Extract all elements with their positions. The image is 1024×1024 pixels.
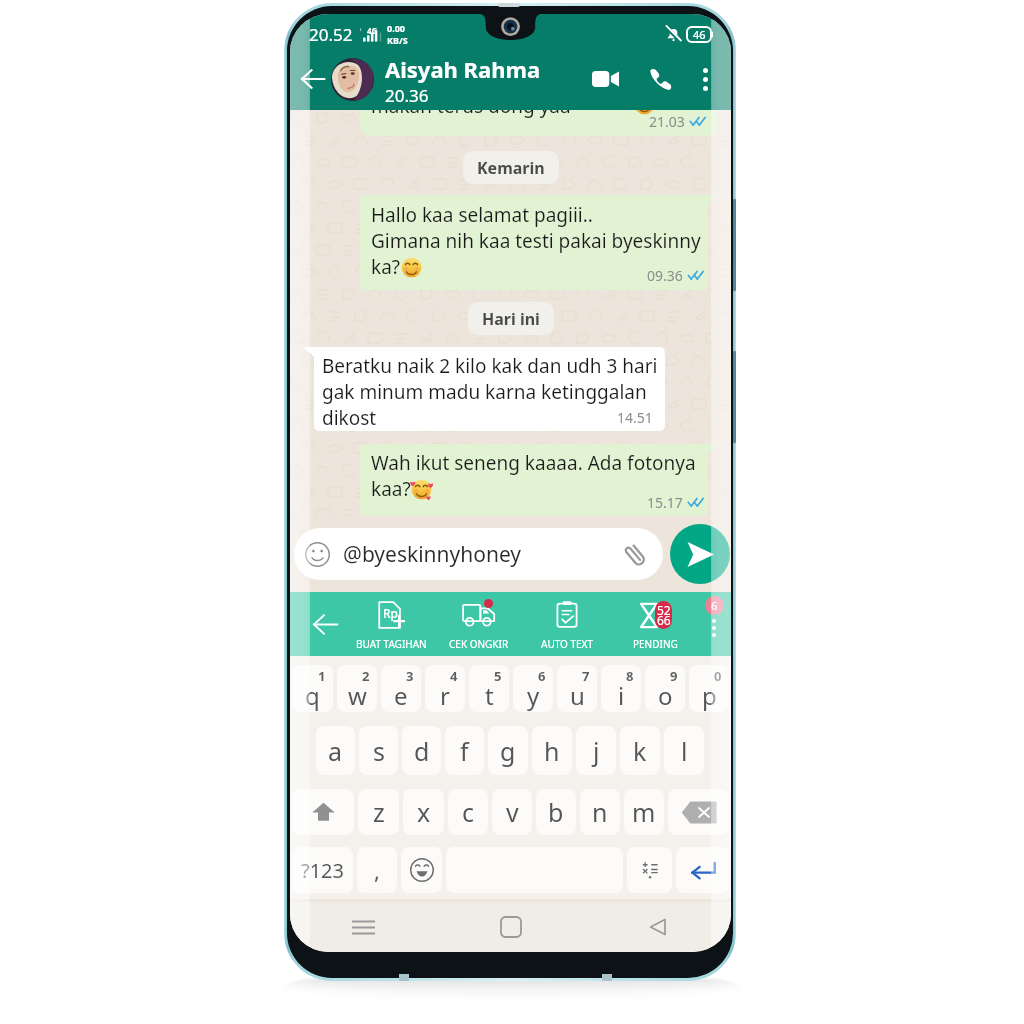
button[interactable]: @byeskinnyhoney <box>294 528 663 580</box>
staticText: l <box>681 734 688 768</box>
staticText: e <box>394 679 408 712</box>
staticText: kaa? <box>371 476 411 502</box>
staticText: 46 <box>693 27 706 42</box>
button[interactable]: 52 <box>611 592 699 656</box>
button[interactable]: w <box>337 665 377 712</box>
staticText: s <box>373 734 385 768</box>
staticText: Rp <box>383 605 399 621</box>
staticText: u <box>570 679 585 712</box>
staticText: 2 <box>362 667 370 685</box>
button[interactable]: Backspace <box>668 789 729 835</box>
staticText: makan terus dong yaa <box>371 110 571 119</box>
staticText: Beratku naik 2 kilo kak dan udh 3 hari <box>322 353 658 379</box>
staticText: i <box>618 679 625 712</box>
button[interactable]: r <box>425 665 465 712</box>
staticText: ka? <box>371 254 401 280</box>
button[interactable]: z <box>358 789 399 835</box>
button[interactable]: d <box>402 726 441 775</box>
staticText: 4 <box>450 667 458 685</box>
button[interactable]: g <box>488 726 528 775</box>
button[interactable]: AUTO TEXT <box>523 592 611 656</box>
staticText: k <box>633 734 647 768</box>
button[interactable]: u <box>557 665 597 712</box>
button[interactable]: e <box>381 665 421 712</box>
staticText: z <box>373 795 385 829</box>
button[interactable]: Rp <box>347 592 435 656</box>
staticText: o <box>658 679 673 712</box>
button[interactable]: More <box>700 614 728 642</box>
button[interactable]: Video call <box>585 59 625 99</box>
staticText: CEK ONGKIR <box>449 637 509 651</box>
staticText: c <box>462 795 475 829</box>
staticText: 5 <box>494 667 502 685</box>
staticText: 7 <box>582 667 590 685</box>
staticText: d <box>414 734 430 768</box>
button[interactable]: v <box>492 789 532 835</box>
staticText: 9 <box>670 667 678 685</box>
staticText: r <box>440 679 450 712</box>
staticText: 14.51 <box>617 408 653 427</box>
button[interactable]: t <box>469 665 509 712</box>
staticText: p <box>702 679 717 712</box>
staticText: BUAT TAGIHAN <box>356 637 427 651</box>
button[interactable]: CEK ONGKIR <box>435 592 523 656</box>
staticText: a <box>328 734 343 768</box>
button[interactable]: c <box>448 789 488 835</box>
button[interactable]: Voice call <box>643 62 677 96</box>
staticText: y <box>527 679 540 712</box>
button[interactable]: p <box>689 665 729 712</box>
staticText: t <box>485 679 494 712</box>
staticText: 1 <box>318 667 326 685</box>
button[interactable]: Back <box>305 604 345 644</box>
staticText: v <box>506 795 519 829</box>
button[interactable]: a <box>316 726 355 775</box>
button[interactable]: Recent apps <box>290 902 437 952</box>
staticText: 09.36 <box>647 266 683 285</box>
button[interactable]: b <box>536 789 576 835</box>
button[interactable]: n <box>580 789 620 835</box>
button[interactable]: Send <box>670 524 730 584</box>
button[interactable]: ?123 <box>292 847 353 893</box>
staticText: g <box>500 734 516 768</box>
button[interactable]: f <box>445 726 484 775</box>
button[interactable]: , <box>357 847 397 893</box>
button[interactable]: x <box>403 789 444 835</box>
button[interactable]: Symbols <box>627 847 672 893</box>
staticText: 21.03 <box>649 112 685 131</box>
button[interactable]: s <box>359 726 398 775</box>
staticText: 6 <box>538 667 546 685</box>
staticText: Hari ini <box>482 308 540 330</box>
staticText: 20.36 <box>385 84 429 104</box>
staticText: m <box>632 795 656 829</box>
staticText: ?123 <box>301 857 344 884</box>
button[interactable]: k <box>620 726 660 775</box>
staticText: Wah ikut seneng kaaaa. Ada fotonya <box>371 450 696 476</box>
staticText: KB/S <box>387 34 408 46</box>
staticText: 15.17 <box>647 493 683 512</box>
button[interactable]: Back <box>296 62 330 96</box>
button[interactable]: l <box>664 726 704 775</box>
button[interactable]: q <box>292 665 333 712</box>
button[interactable]: Emoji <box>401 847 442 893</box>
button[interactable]: Profile photo <box>331 58 374 101</box>
button[interactable]: m <box>624 789 664 835</box>
staticText: gak minum madu karna ketinggalan <box>322 379 647 405</box>
button[interactable]: i <box>601 665 641 712</box>
button[interactable]: y <box>513 665 553 712</box>
staticText: n <box>592 795 608 829</box>
button[interactable]: Back <box>584 902 731 952</box>
staticText: b <box>548 795 564 829</box>
button[interactable]: Shift <box>292 789 354 835</box>
button[interactable]: o <box>645 665 685 712</box>
button[interactable]: Home <box>437 902 584 952</box>
button[interactable]: More options <box>691 65 719 93</box>
button[interactable]: Enter <box>676 847 729 893</box>
staticText: j <box>593 734 600 768</box>
button[interactable]: h <box>532 726 572 775</box>
staticText: Gimana nih kaa testi pakai byeskinny <box>371 228 701 254</box>
staticText: dikost <box>322 405 377 431</box>
staticText: 4G <box>367 25 378 36</box>
staticText: 3 <box>406 667 414 685</box>
button[interactable]: j <box>576 726 616 775</box>
